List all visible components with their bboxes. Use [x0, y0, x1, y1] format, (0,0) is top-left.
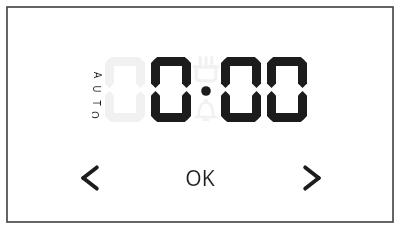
staticText: U	[90, 85, 104, 93]
staticText: T	[90, 100, 104, 106]
button[interactable]: Previous	[67, 155, 113, 201]
button[interactable]: Next	[289, 155, 335, 201]
button[interactable]: OK	[166, 160, 234, 196]
staticText: A	[90, 71, 104, 78]
staticText: O	[92, 111, 102, 119]
staticText: OK	[185, 164, 215, 193]
